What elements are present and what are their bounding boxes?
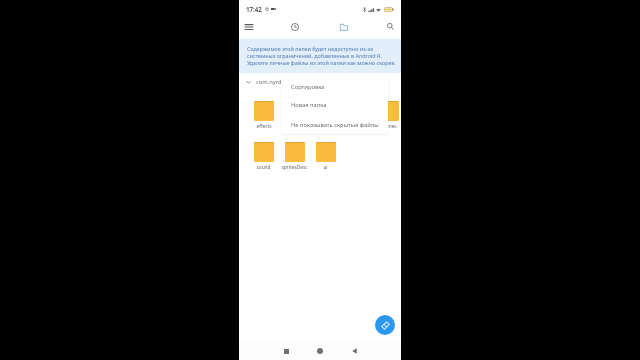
button[interactable]: Search: [379, 14, 401, 39]
button[interactable]: hidden: [284, 101, 315, 130]
staticText: Удалите личные файлы из этой папки как м…: [247, 59, 396, 66]
button[interactable]: Back: [337, 342, 371, 360]
button[interactable]: effects: [253, 101, 284, 130]
staticText: Новая папка: [291, 101, 327, 109]
staticText: Содержимое этой папки будет недоступно и…: [247, 45, 374, 52]
button[interactable]: music: [315, 101, 346, 130]
button[interactable]: Не показывать скрытые файлы: [281, 115, 388, 134]
staticText: 17:42: [246, 5, 262, 13]
button[interactable]: res: [347, 101, 378, 130]
staticText: com.nyrd: [256, 78, 282, 86]
staticText: spritesDesc: [281, 164, 308, 171]
staticText: ui: [323, 164, 328, 171]
staticText: hidden: [287, 123, 303, 130]
staticText: Сортировка: [291, 83, 325, 91]
staticText: системных ограничений, добавленных в And…: [247, 52, 382, 59]
button[interactable]: ui: [315, 142, 346, 171]
button[interactable]: Новая папка: [281, 95, 388, 114]
button[interactable]: scenes: [378, 101, 409, 130]
button[interactable]: Home: [303, 342, 337, 360]
staticText: Не показывать скрытые файлы: [291, 121, 379, 129]
button[interactable]: Menu: [238, 14, 260, 39]
button[interactable]: Сортировка: [281, 79, 388, 95]
button[interactable]: spritesDesc: [284, 142, 315, 171]
staticText: sound: [256, 164, 271, 171]
button[interactable]: Folders: [333, 14, 355, 39]
button[interactable]: Recent: [284, 14, 306, 39]
button[interactable]: Clean: [375, 315, 395, 335]
button[interactable]: com.nyrd: [246, 78, 282, 86]
button[interactable]: sound: [253, 142, 284, 171]
staticText: effects: [256, 123, 272, 130]
staticText: music: [319, 123, 333, 130]
button[interactable]: Recents: [269, 342, 303, 360]
staticText: res: [354, 123, 361, 130]
staticText: scenes: [381, 123, 397, 130]
